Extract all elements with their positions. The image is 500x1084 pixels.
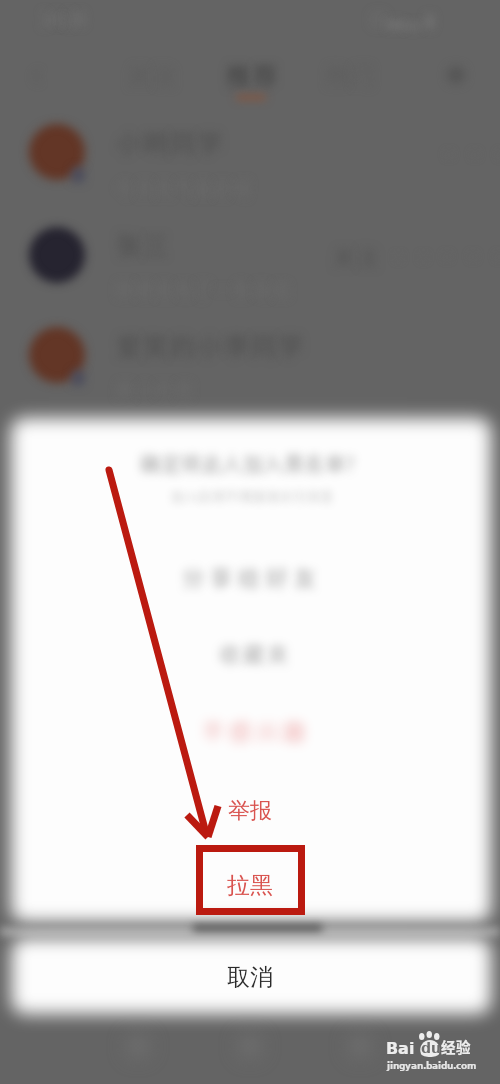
button[interactable] [13,556,487,618]
button[interactable] [0,110,500,196]
button[interactable]: 举报 [13,784,487,838]
staticText: 拉黑 [227,871,273,900]
button[interactable] [210,52,292,100]
button[interactable] [13,708,487,770]
button[interactable] [13,632,487,694]
button[interactable]: Messages tab [208,1022,292,1078]
button[interactable]: Profile tab [318,1022,402,1078]
button[interactable]: 拉黑 [13,858,487,912]
button[interactable] [0,210,500,298]
button[interactable] [13,430,487,526]
button[interactable]: 取消 [13,950,487,1004]
staticText: 举报 [228,797,272,825]
staticText: 取消 [227,963,273,992]
button[interactable]: Home tab [96,1022,180,1078]
button[interactable] [0,312,500,398]
